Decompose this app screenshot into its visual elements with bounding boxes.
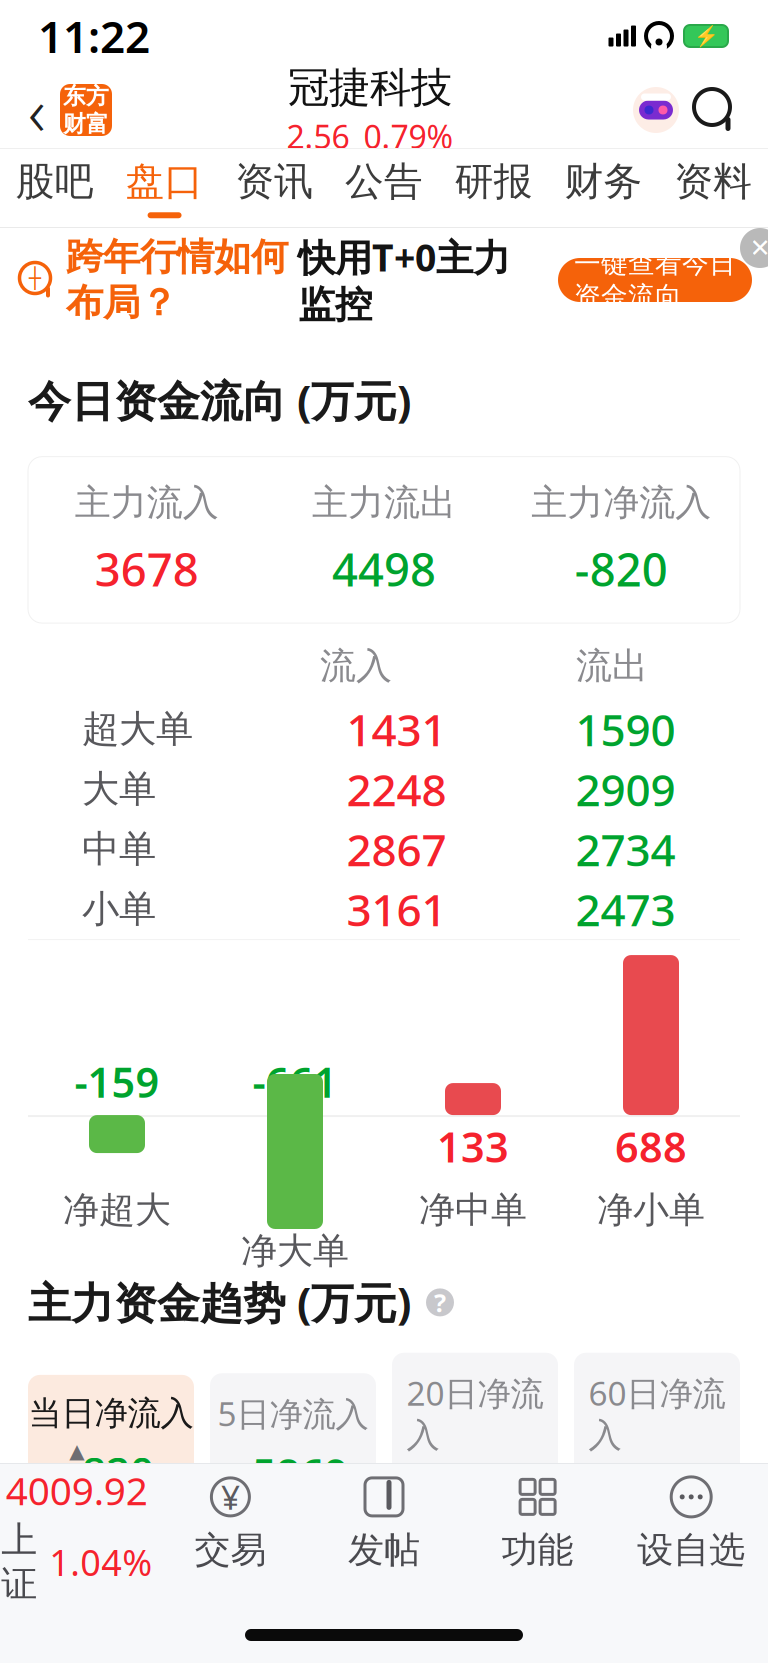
staticText: ‹ <box>28 66 46 154</box>
staticText: 主力流出 <box>312 481 456 525</box>
staticText: 资料 <box>674 158 752 205</box>
staticText: -9325 <box>420 1466 530 1523</box>
staticText: 1.04% <box>49 1538 152 1586</box>
staticText: 2.56 <box>286 115 349 158</box>
button[interactable]: 功能 <box>461 1464 614 1582</box>
button[interactable]: Close <box>724 228 768 272</box>
button[interactable]: ┼ <box>0 228 768 332</box>
staticText: 流入 <box>320 644 392 688</box>
staticText: 5日净流入 <box>217 1391 368 1435</box>
button[interactable]: 东方财富 <box>60 84 112 136</box>
staticText: 2867 <box>346 820 446 878</box>
button[interactable]: 盘口 <box>110 149 219 227</box>
staticText: 净超大 <box>63 1188 171 1232</box>
staticText: 流出 <box>576 644 648 688</box>
button[interactable]: 5日净流入 <box>210 1373 376 1520</box>
staticText: 20日净流入 <box>406 1371 543 1456</box>
staticText: 4498 <box>332 539 436 599</box>
staticText: 净小单 <box>597 1188 705 1232</box>
staticText: ✕ <box>749 234 768 262</box>
staticText: 交易 <box>194 1528 266 1572</box>
button[interactable]: ▲ <box>0 1440 154 1606</box>
staticText: 快用T+0主力监控 <box>298 232 510 328</box>
staticText: 主力流入 <box>75 481 219 525</box>
button[interactable]: 设自选 <box>614 1464 768 1582</box>
button[interactable]: 资料 <box>658 149 768 227</box>
staticText: 当日净流入 <box>28 1393 193 1434</box>
staticText: 跨年行情如何布局？ <box>66 234 288 326</box>
staticText: 净中单 <box>419 1188 527 1232</box>
staticText: 今日资金流向 (万元) <box>28 372 411 429</box>
staticText: 发帖 <box>348 1528 420 1572</box>
staticText: 公告 <box>345 158 423 205</box>
button[interactable]: 公告 <box>329 149 439 227</box>
staticText: 688 <box>615 1119 687 1174</box>
staticText: 1431 <box>346 700 446 758</box>
staticText: 财务 <box>564 158 642 205</box>
staticText: 资讯 <box>235 158 313 205</box>
staticText: 股吧 <box>16 158 94 205</box>
button[interactable]: 资讯 <box>219 149 329 227</box>
staticText: 上证 <box>1 1518 37 1606</box>
staticText: -7552 <box>602 1466 712 1523</box>
button[interactable]: 当日净流入 <box>28 1375 194 1518</box>
staticText: -661 <box>252 1054 337 1109</box>
staticText: 1590 <box>575 700 675 758</box>
button[interactable]: Search <box>684 79 746 141</box>
staticText: 2473 <box>575 880 675 938</box>
staticText: ⚡ <box>693 25 718 47</box>
staticText: 中单 <box>82 826 156 872</box>
staticText: 冠捷科技 <box>288 62 452 113</box>
button[interactable]: ¥ <box>154 1464 307 1582</box>
staticText: 60日净流入 <box>588 1371 725 1456</box>
button[interactable]: 财务 <box>549 149 658 227</box>
staticText: 11:22 <box>38 7 150 65</box>
staticText: ┼ <box>29 267 41 289</box>
staticText: -159 <box>74 1054 159 1109</box>
button[interactable]: 20日净流入 <box>392 1353 558 1541</box>
staticText: 2734 <box>575 820 675 878</box>
staticText: 4009.92 <box>6 1464 148 1516</box>
staticText: 盘口 <box>126 158 204 205</box>
staticText: 功能 <box>502 1528 574 1572</box>
staticText: 一键查看今日资金流向 <box>574 247 736 313</box>
staticText: 东方 <box>63 82 109 110</box>
staticText: 大单 <box>82 766 156 812</box>
button[interactable]: 股吧 <box>0 149 110 227</box>
staticText: 2248 <box>346 760 446 818</box>
staticText: 小单 <box>82 886 156 932</box>
staticText: ▲ <box>69 1440 84 1462</box>
staticText: -820 <box>68 1444 154 1500</box>
staticText: 2909 <box>575 760 675 818</box>
staticText: 3678 <box>95 539 199 599</box>
staticText: 财富 <box>63 110 109 138</box>
button[interactable]: 智能助手 <box>628 82 684 138</box>
staticText: -5869 <box>238 1445 348 1502</box>
button[interactable]: 研报 <box>439 149 549 227</box>
button[interactable]: 发帖 <box>307 1464 461 1582</box>
staticText: ¥ <box>221 1475 240 1519</box>
staticText: 主力资金趋势 (万元) <box>28 1274 411 1331</box>
staticText: 研报 <box>455 158 533 205</box>
staticText: 设自选 <box>637 1528 745 1572</box>
button[interactable]: Help <box>423 1285 457 1319</box>
staticText: 主力净流入 <box>531 481 711 525</box>
staticText: ? <box>434 1286 446 1319</box>
staticText: 净大单 <box>241 1229 349 1273</box>
staticText: 0.79% <box>363 115 453 158</box>
button[interactable]: Back <box>14 79 60 141</box>
staticText: 超大单 <box>82 706 193 752</box>
button[interactable]: 60日净流入 <box>574 1353 740 1541</box>
staticText: -820 <box>575 539 668 599</box>
staticText: 133 <box>437 1119 509 1174</box>
staticText: 3161 <box>346 880 446 938</box>
